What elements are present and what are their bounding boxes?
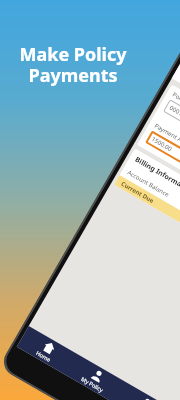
staticText: Billing Information: [133, 155, 180, 197]
staticText: Make Policy Payments: [10, 42, 136, 88]
staticText: Account Balance: [126, 169, 171, 199]
button[interactable]: Home: [18, 326, 77, 373]
staticText: 000123456789: [168, 104, 180, 132]
staticText: 1500.00: [150, 135, 174, 153]
staticText: Current Due: [120, 180, 155, 204]
button[interactable]: My Policy: [66, 354, 126, 400]
other: My Policy: [90, 368, 105, 383]
staticText: Payment Amount: [153, 122, 180, 154]
other: Home: [42, 340, 57, 355]
staticText: Home: [35, 349, 52, 363]
staticText: My Policy: [80, 375, 105, 394]
other: More: [139, 396, 154, 400]
staticText: Policy Number: [171, 91, 180, 118]
button[interactable]: More: [115, 382, 174, 400]
